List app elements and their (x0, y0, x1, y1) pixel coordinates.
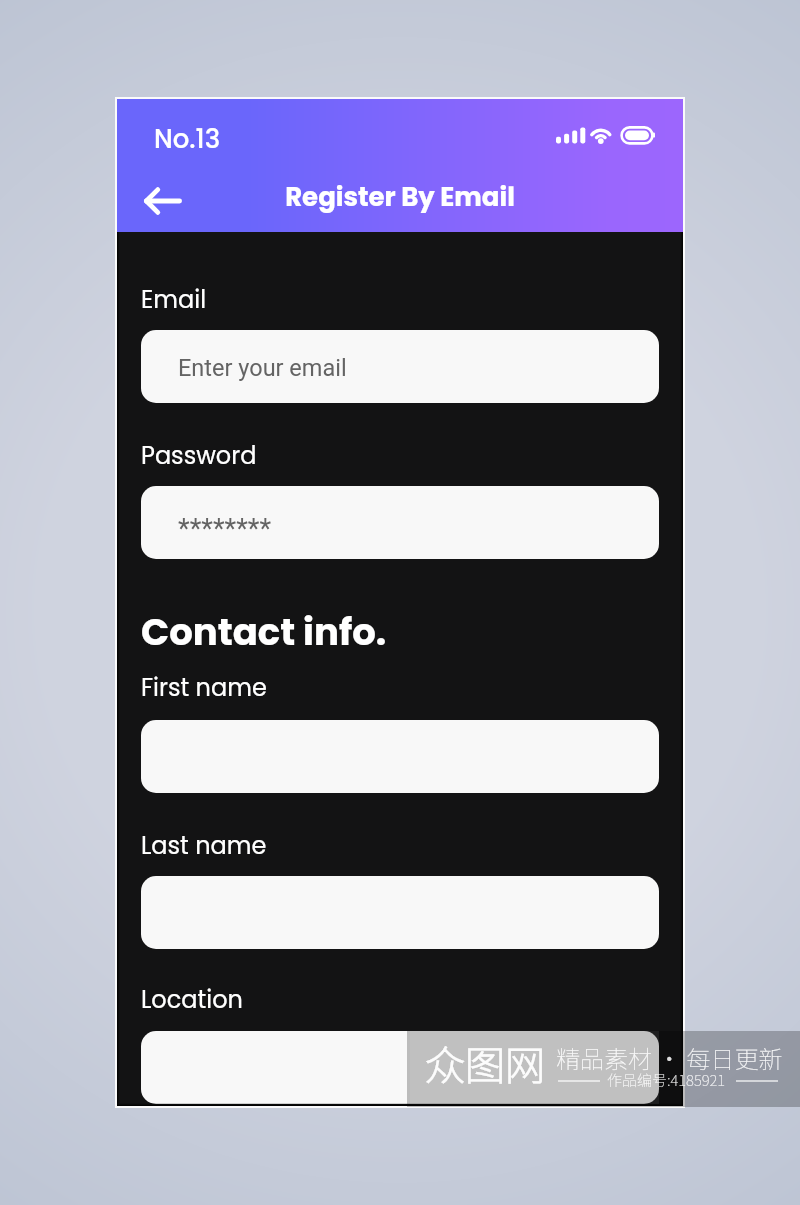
staticText: Last name (141, 829, 267, 863)
staticText: 精品素材 · 每日更新 (556, 1040, 783, 1075)
button[interactable] (141, 876, 659, 949)
staticText: 作品编号:4185921 (607, 1069, 726, 1091)
button[interactable] (141, 1031, 659, 1104)
staticText: Password (141, 439, 257, 473)
button[interactable] (141, 720, 659, 793)
staticText: 众图网 (425, 1034, 545, 1092)
staticText: First name (141, 671, 267, 705)
staticText: Register By Email (117, 179, 683, 215)
staticText: Email (141, 283, 207, 317)
staticText: Enter your email (178, 354, 347, 382)
button[interactable]: Enter your email (141, 330, 659, 403)
staticText: No.13 (154, 121, 221, 157)
staticText: Contact info. (141, 606, 387, 658)
staticText: Location (141, 983, 243, 1017)
button[interactable]: ******** (141, 486, 659, 559)
staticText: ******** (178, 513, 272, 545)
button[interactable]: Back (133, 175, 193, 227)
